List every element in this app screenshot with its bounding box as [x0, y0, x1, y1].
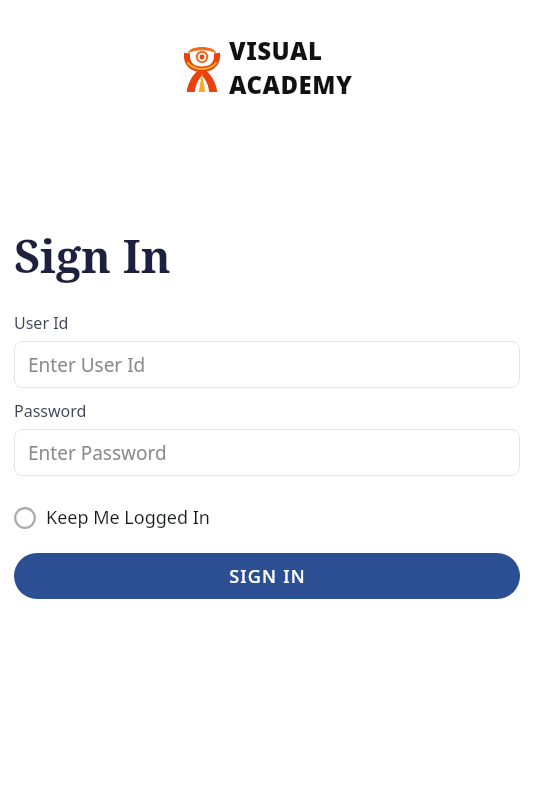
- other: Visual Academy logo: [182, 44, 222, 92]
- button[interactable]: Enter User Id: [14, 341, 520, 388]
- staticText: VISUAL: [229, 34, 323, 67]
- staticText: ACADEMY: [229, 68, 353, 101]
- staticText: Keep Me Logged In: [46, 505, 210, 530]
- button[interactable]: Keep Me Logged In: [14, 501, 210, 534]
- staticText: Password: [14, 400, 87, 422]
- button[interactable]: SIGN IN: [14, 553, 520, 599]
- staticText: Enter User Id: [28, 352, 146, 378]
- staticText: User Id: [14, 312, 69, 334]
- staticText: Sign In: [14, 225, 171, 286]
- staticText: SIGN IN: [229, 564, 306, 589]
- staticText: Enter Password: [28, 440, 167, 466]
- button[interactable]: Enter Password: [14, 429, 520, 476]
